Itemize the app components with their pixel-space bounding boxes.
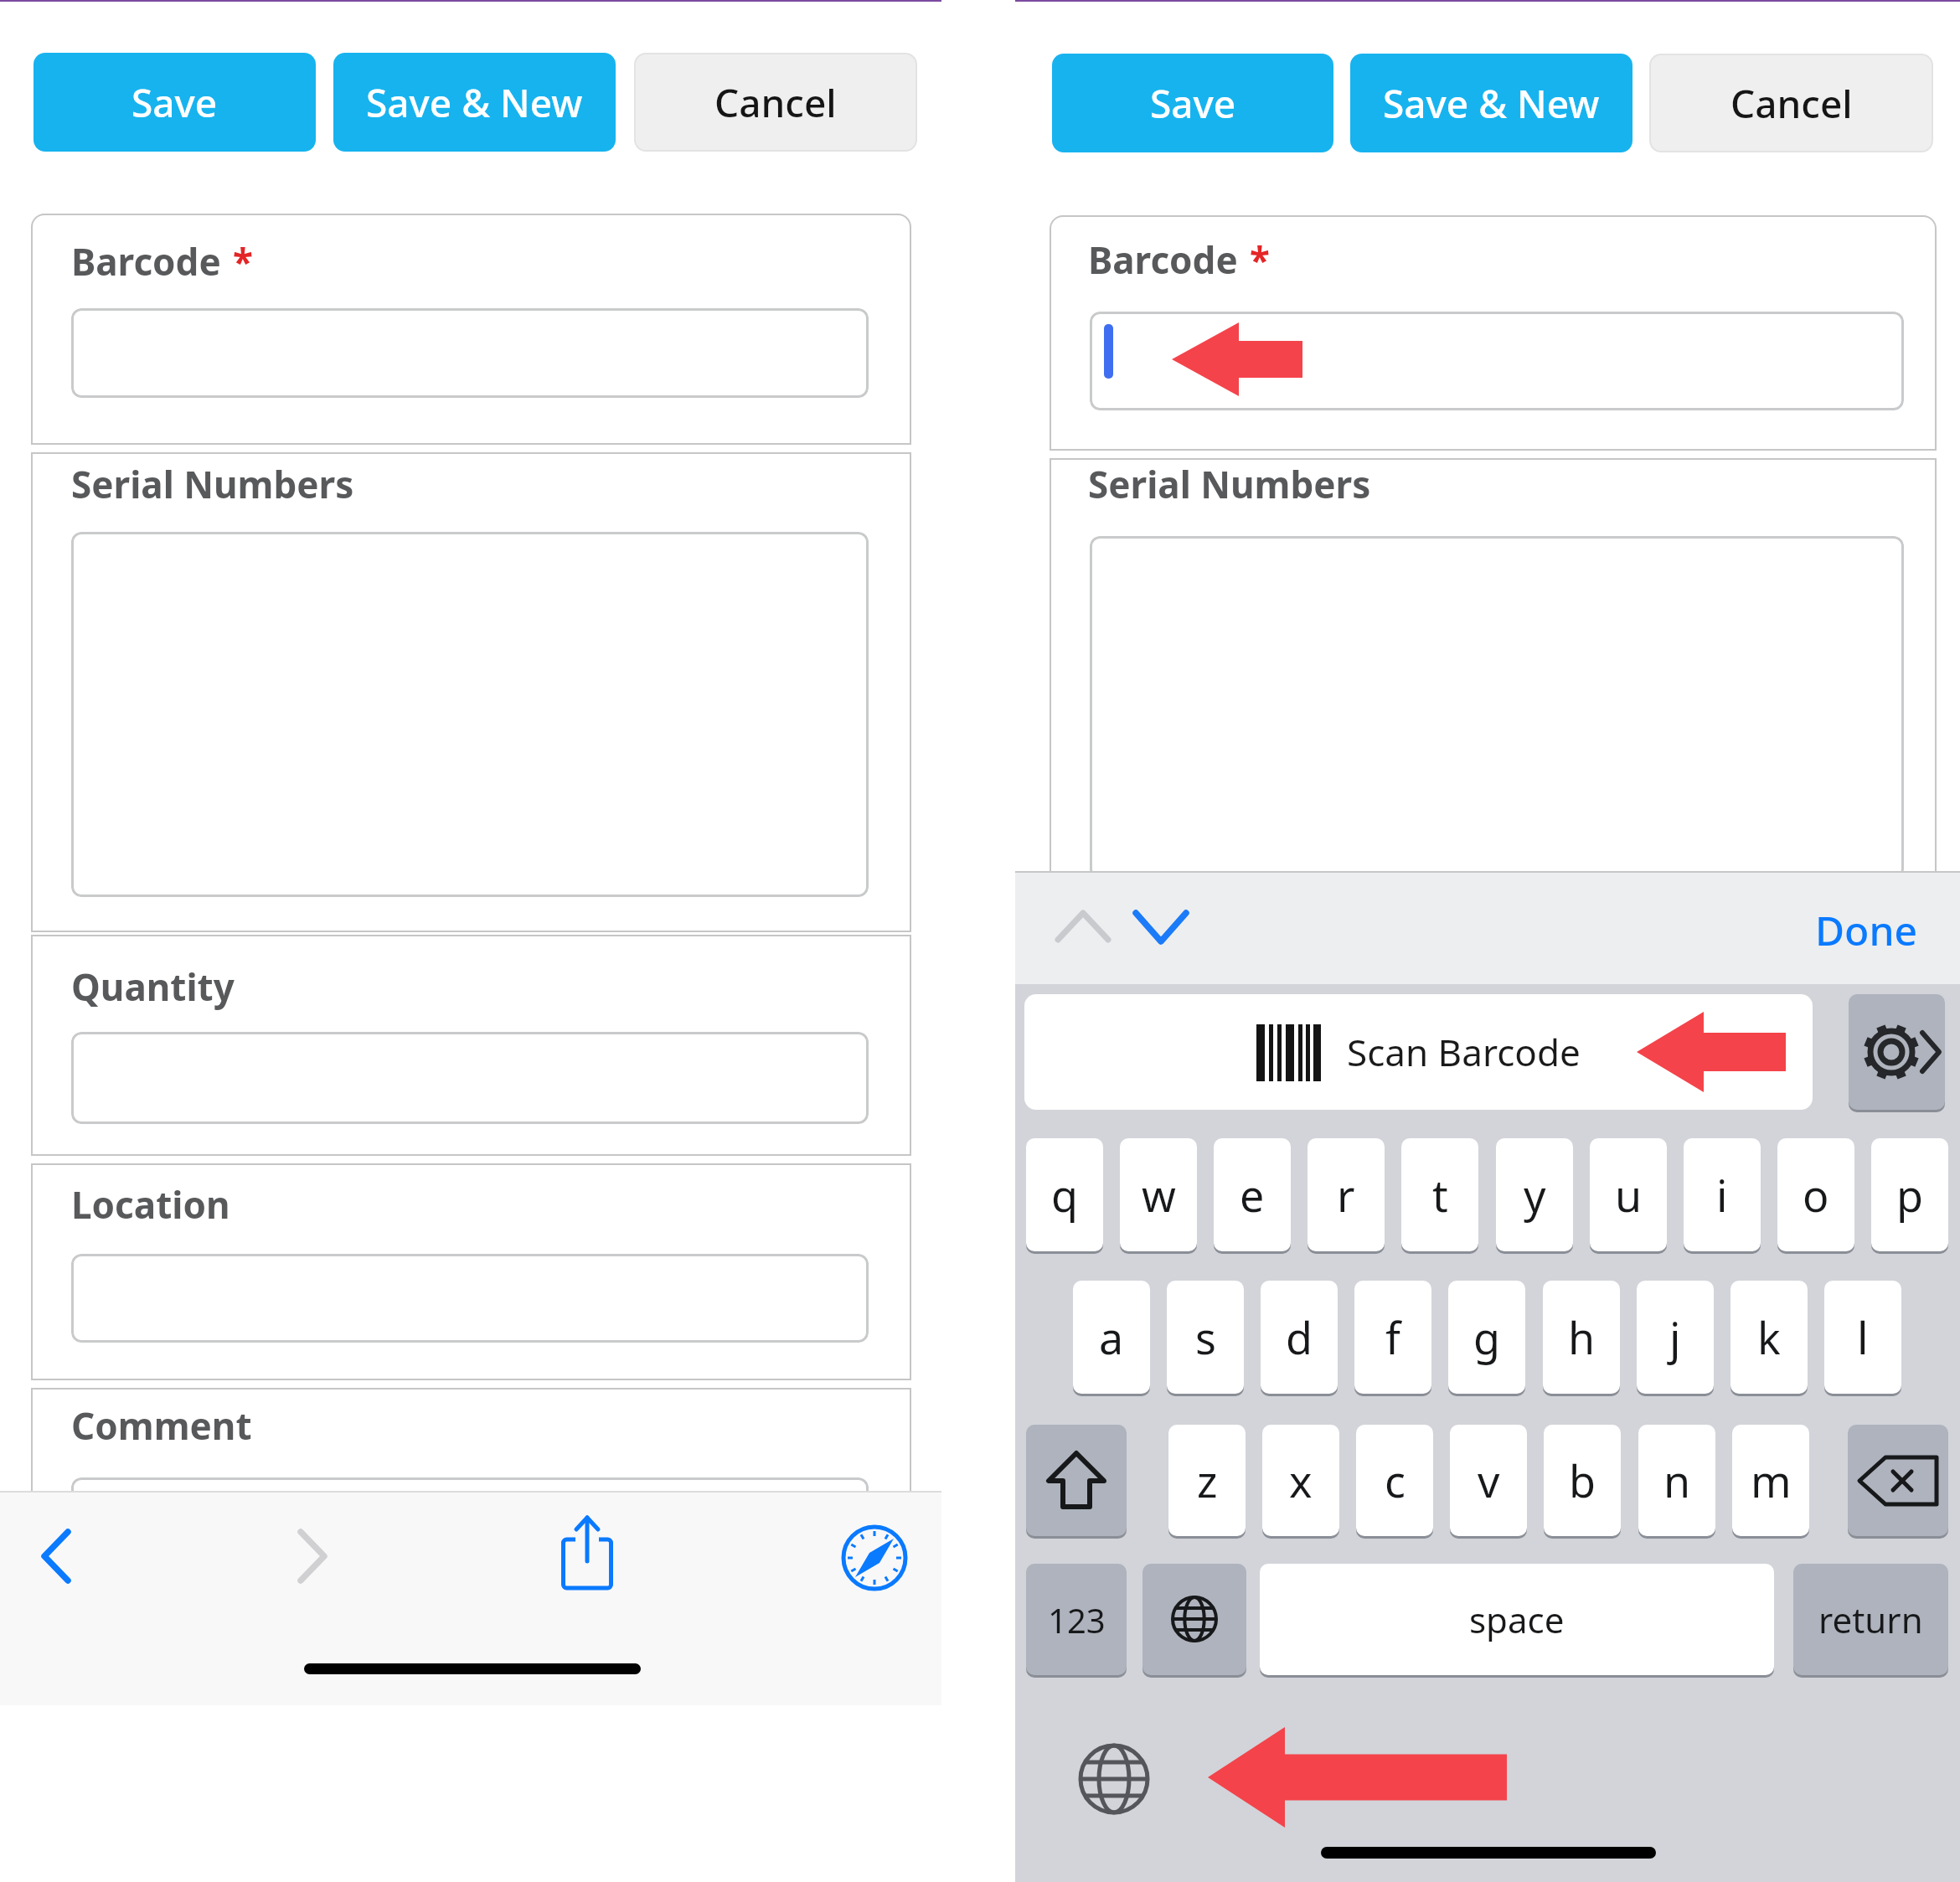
staticText: * xyxy=(1250,235,1270,285)
staticText: c xyxy=(1385,1451,1406,1510)
staticText: r xyxy=(1337,1165,1355,1225)
button[interactable]: Save & New xyxy=(1350,54,1632,152)
button[interactable]: u xyxy=(1590,1138,1667,1251)
staticText: s xyxy=(1195,1307,1216,1367)
staticText: b xyxy=(1569,1451,1596,1510)
staticText: d xyxy=(1286,1307,1313,1367)
button[interactable] xyxy=(1026,1425,1127,1536)
button[interactable]: Save & New xyxy=(333,53,616,152)
button[interactable]: Save xyxy=(34,53,316,152)
button[interactable] xyxy=(1090,312,1904,410)
button[interactable]: j xyxy=(1637,1281,1714,1394)
staticText: Scan Barcode xyxy=(1347,1027,1581,1077)
button[interactable]: x xyxy=(1262,1425,1339,1536)
staticText: Comment xyxy=(71,1400,252,1451)
staticText: Save xyxy=(132,76,218,129)
staticText: v xyxy=(1478,1451,1500,1510)
button[interactable] xyxy=(71,1477,869,1570)
staticText: p xyxy=(1896,1165,1923,1225)
staticText: n xyxy=(1663,1451,1691,1510)
staticText: y xyxy=(1524,1165,1546,1225)
button[interactable]: s xyxy=(1167,1281,1244,1394)
staticText: j xyxy=(1669,1307,1681,1367)
staticText: Save & New xyxy=(1383,77,1600,130)
button[interactable]: t xyxy=(1401,1138,1478,1251)
button[interactable]: f xyxy=(1354,1281,1431,1394)
staticText: Save xyxy=(1150,77,1236,130)
staticText: Barcode xyxy=(71,236,221,286)
staticText: h xyxy=(1568,1307,1596,1367)
button[interactable]: space xyxy=(1260,1564,1774,1675)
button[interactable] xyxy=(71,308,869,398)
staticText: w xyxy=(1142,1165,1176,1225)
staticText: z xyxy=(1197,1451,1218,1510)
button[interactable] xyxy=(71,1254,869,1343)
staticText: Serial Numbers xyxy=(71,459,354,509)
button[interactable]: m xyxy=(1732,1425,1809,1536)
staticText: q xyxy=(1051,1165,1078,1225)
button[interactable]: k xyxy=(1730,1281,1808,1394)
staticText: g xyxy=(1473,1307,1500,1367)
staticText: Location xyxy=(71,1179,230,1230)
button[interactable]: Cancel xyxy=(1649,54,1933,152)
button[interactable]: a xyxy=(1073,1281,1150,1394)
staticText: Save & New xyxy=(366,76,583,129)
button[interactable]: z xyxy=(1168,1425,1246,1536)
staticText: t xyxy=(1432,1165,1448,1225)
button[interactable] xyxy=(71,532,869,897)
staticText: Serial Numbers xyxy=(1088,459,1371,509)
button[interactable]: v xyxy=(1450,1425,1527,1536)
staticText: * xyxy=(233,236,253,286)
button[interactable]: c xyxy=(1356,1425,1433,1536)
button[interactable]: g xyxy=(1448,1281,1525,1394)
button[interactable]: Done xyxy=(1776,903,1918,953)
staticText: a xyxy=(1099,1307,1124,1367)
button[interactable]: w xyxy=(1120,1138,1197,1251)
button[interactable]: Save xyxy=(1052,54,1333,152)
button[interactable]: n xyxy=(1638,1425,1715,1536)
button[interactable]: o xyxy=(1777,1138,1854,1251)
button[interactable]: l xyxy=(1824,1281,1901,1394)
staticText: Done xyxy=(1815,903,1918,953)
staticText: 123 xyxy=(1048,1597,1106,1642)
button[interactable] xyxy=(1090,536,1904,879)
button[interactable] xyxy=(1024,994,1813,1110)
staticText: i xyxy=(1716,1165,1728,1225)
staticText: l xyxy=(1857,1307,1869,1367)
button[interactable] xyxy=(1848,1425,1948,1536)
button[interactable]: e xyxy=(1214,1138,1291,1251)
staticText: k xyxy=(1757,1307,1781,1367)
staticText: space xyxy=(1469,1596,1565,1643)
button[interactable] xyxy=(1142,1564,1246,1675)
button[interactable]: i xyxy=(1684,1138,1761,1251)
button[interactable]: b xyxy=(1544,1425,1621,1536)
button[interactable]: r xyxy=(1308,1138,1385,1251)
staticText: Quantity xyxy=(71,962,235,1012)
staticText: Cancel xyxy=(714,76,837,129)
button[interactable]: p xyxy=(1871,1138,1948,1251)
button[interactable]: d xyxy=(1261,1281,1338,1394)
staticText: e xyxy=(1240,1165,1265,1225)
staticText: o xyxy=(1803,1165,1829,1225)
button[interactable]: y xyxy=(1496,1138,1573,1251)
staticText: Cancel xyxy=(1730,77,1853,130)
button[interactable] xyxy=(71,1032,869,1124)
staticText: f xyxy=(1385,1307,1400,1367)
button[interactable]: Cancel xyxy=(634,53,917,152)
button[interactable] xyxy=(1849,994,1945,1110)
button[interactable]: 123 xyxy=(1026,1564,1127,1675)
staticText: u xyxy=(1615,1165,1643,1225)
button[interactable]: return xyxy=(1793,1564,1948,1675)
button[interactable]: h xyxy=(1543,1281,1620,1394)
staticText: return xyxy=(1818,1596,1923,1643)
button[interactable]: q xyxy=(1026,1138,1103,1251)
staticText: Barcode xyxy=(1088,235,1238,285)
staticText: m xyxy=(1751,1451,1792,1510)
staticText: x xyxy=(1289,1451,1313,1510)
